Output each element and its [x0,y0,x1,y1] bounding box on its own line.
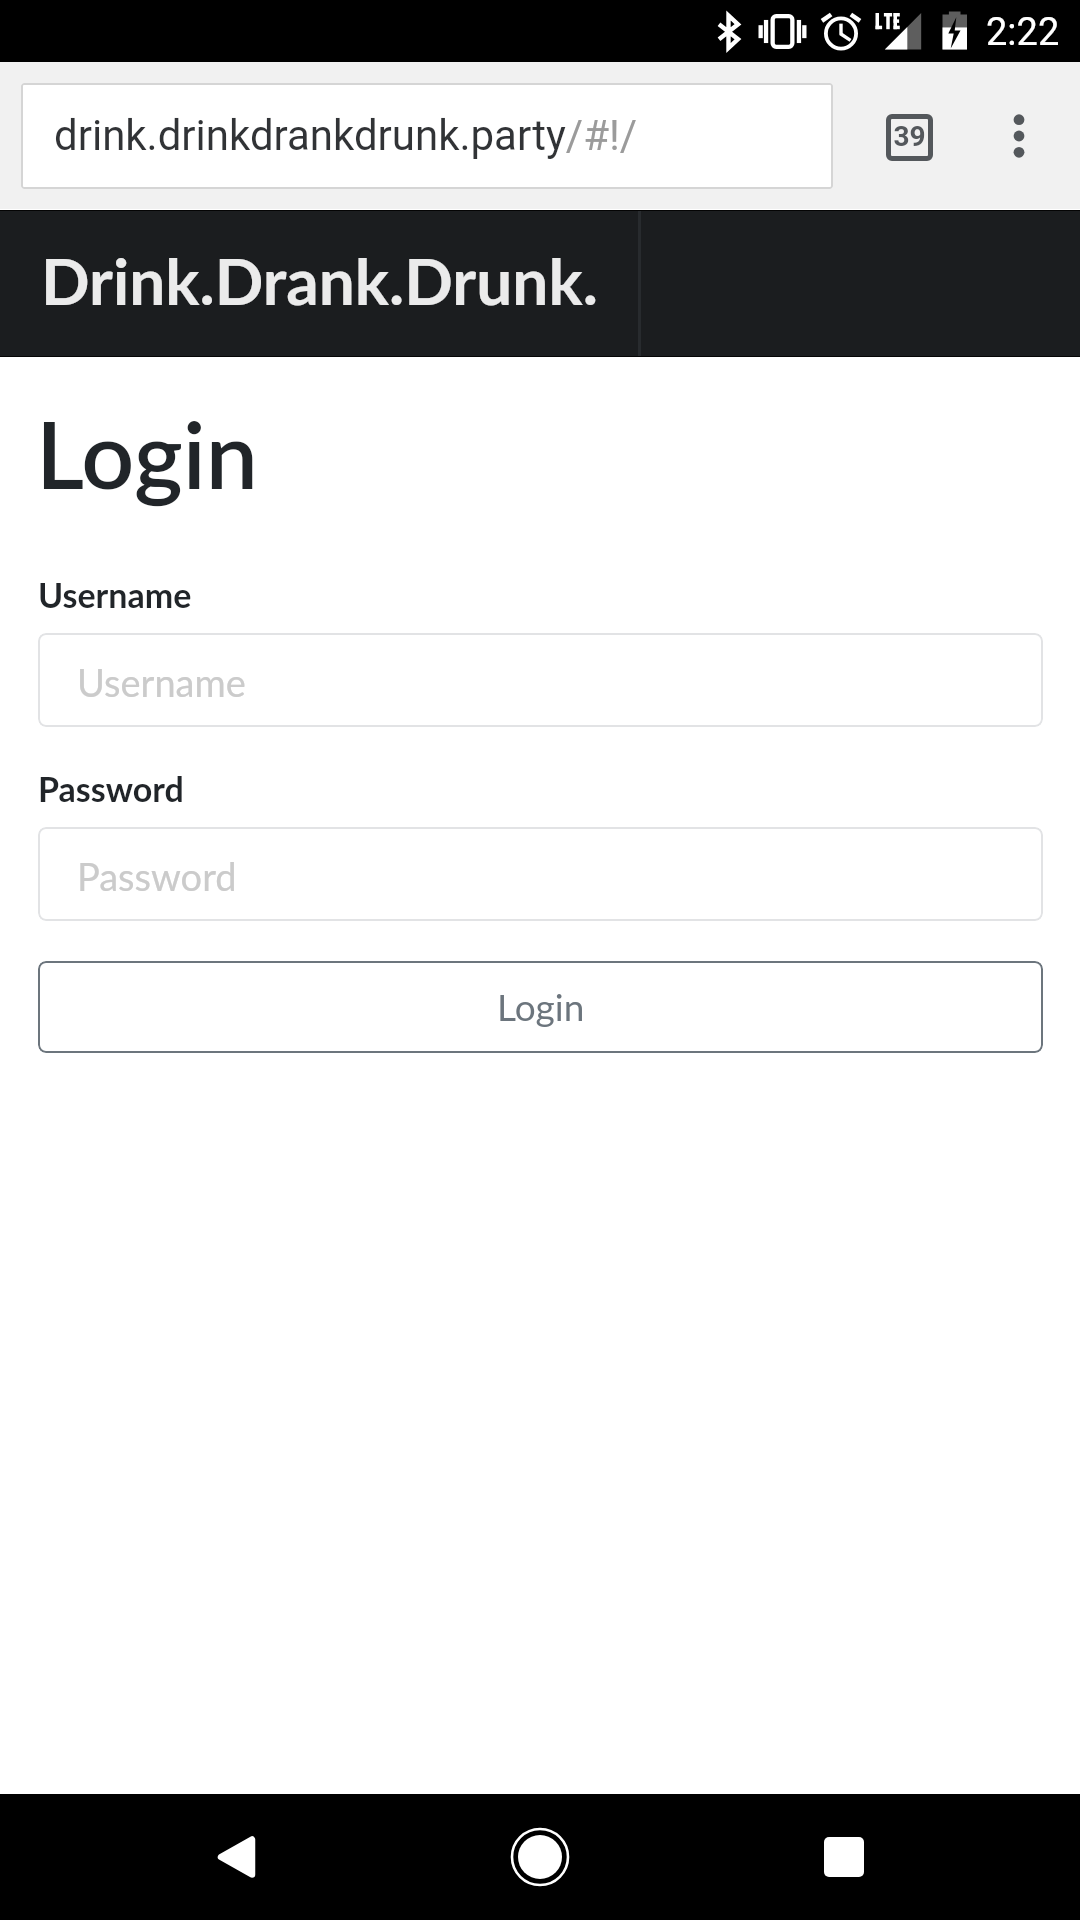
staticText: 2:22 [986,10,1060,55]
staticText: drink.drinkdrankdrunk.party/#!/ [54,111,638,160]
button[interactable]: drink.drinkdrankdrunk.party/#!/ [21,83,833,189]
button[interactable]: Tabs, 39 open [859,87,959,187]
staticText: Login [497,984,585,1028]
button[interactable]: Back [169,1794,303,1920]
staticText: Password [38,768,184,809]
staticText: Username [38,574,192,615]
button[interactable]: Username [38,633,1043,727]
button[interactable]: Home [473,1794,607,1920]
button[interactable]: Password [38,827,1043,921]
staticText: Drink.Drank.Drunk. [41,242,598,319]
staticText: 39 [893,120,926,153]
staticText: Username [77,659,246,705]
button[interactable]: Login [38,961,1043,1053]
button[interactable]: More options [969,86,1069,186]
staticText: Password [77,853,237,899]
button[interactable]: Recent apps [777,1794,911,1920]
staticText: Login [36,397,258,509]
